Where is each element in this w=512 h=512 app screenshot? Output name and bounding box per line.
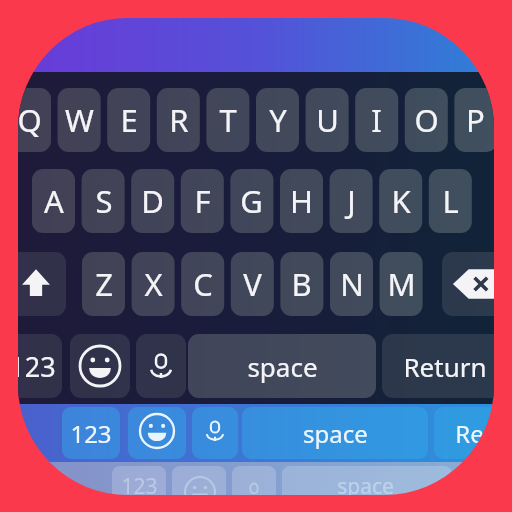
button[interactable]: V bbox=[231, 252, 274, 316]
staticText: X bbox=[144, 263, 163, 305]
button[interactable]: Z bbox=[82, 252, 125, 316]
staticText: I bbox=[371, 99, 382, 141]
staticText: Q bbox=[18, 99, 42, 141]
staticText: F bbox=[194, 180, 211, 222]
staticText: space bbox=[337, 472, 394, 495]
staticText: B bbox=[291, 263, 312, 305]
staticText: R bbox=[169, 99, 189, 141]
button[interactable]: 123 bbox=[112, 462, 166, 495]
button[interactable]: Re bbox=[440, 404, 494, 462]
button[interactable]: X bbox=[132, 252, 175, 316]
staticText: V bbox=[243, 263, 262, 305]
staticText: N bbox=[340, 263, 364, 305]
button[interactable]: H bbox=[280, 169, 323, 233]
button[interactable]: I bbox=[355, 88, 398, 152]
staticText: W bbox=[65, 99, 94, 141]
button[interactable]: C bbox=[181, 252, 224, 316]
staticText: S bbox=[95, 180, 113, 222]
button[interactable]: G bbox=[230, 169, 273, 233]
button[interactable]: D bbox=[131, 169, 174, 233]
staticText: 123 bbox=[18, 348, 56, 385]
button[interactable]: L bbox=[429, 169, 472, 233]
staticText: T bbox=[219, 99, 237, 141]
button[interactable]: 123 bbox=[62, 404, 120, 462]
staticText: O bbox=[414, 99, 439, 141]
staticText: M bbox=[387, 263, 416, 305]
button[interactable]: space bbox=[242, 404, 428, 462]
button[interactable]: space bbox=[290, 462, 440, 495]
button[interactable]: 123 bbox=[18, 334, 62, 398]
staticText: 123 bbox=[121, 472, 158, 495]
button[interactable]: K bbox=[379, 169, 422, 233]
button[interactable]: space bbox=[188, 334, 376, 398]
button[interactable]: P bbox=[454, 88, 494, 152]
button[interactable]: U bbox=[306, 88, 349, 152]
staticText: Re bbox=[455, 417, 484, 450]
button[interactable]: Keyboard app icon bbox=[18, 18, 494, 495]
button[interactable]: S bbox=[82, 169, 125, 233]
staticText: U bbox=[316, 99, 339, 141]
button[interactable]: N bbox=[330, 252, 373, 316]
button[interactable]: R bbox=[157, 88, 200, 152]
staticText: Return bbox=[403, 349, 487, 384]
staticText: G bbox=[240, 180, 263, 222]
button[interactable]: Q bbox=[18, 88, 51, 152]
button[interactable]: E bbox=[107, 88, 150, 152]
button[interactable]: M bbox=[380, 252, 423, 316]
button[interactable]: W bbox=[58, 88, 101, 152]
staticText: 123 bbox=[70, 417, 112, 450]
button[interactable]: J bbox=[330, 169, 373, 233]
staticText: Y bbox=[269, 99, 287, 141]
button[interactable]: A bbox=[32, 169, 75, 233]
staticText: L bbox=[442, 180, 459, 222]
button[interactable]: Return bbox=[382, 334, 494, 398]
button[interactable]: B bbox=[280, 252, 323, 316]
button[interactable]: T bbox=[206, 88, 249, 152]
staticText: D bbox=[141, 180, 164, 222]
staticText: space bbox=[247, 349, 318, 384]
button[interactable]: O bbox=[405, 88, 448, 152]
staticText: E bbox=[120, 99, 138, 141]
staticText: P bbox=[466, 99, 485, 141]
button[interactable]: Y bbox=[256, 88, 299, 152]
staticText: space bbox=[303, 417, 368, 450]
staticText: A bbox=[44, 180, 64, 222]
staticText: K bbox=[391, 180, 411, 222]
button[interactable]: F bbox=[181, 169, 224, 233]
staticText: Z bbox=[95, 263, 113, 305]
staticText: H bbox=[290, 180, 313, 222]
staticText: C bbox=[193, 263, 213, 305]
staticText: J bbox=[347, 180, 356, 222]
